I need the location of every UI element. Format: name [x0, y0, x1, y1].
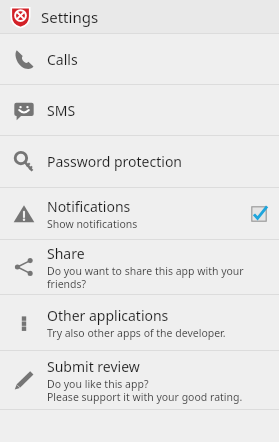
button[interactable]: Submit review: [0, 351, 279, 409]
staticText: Share: [47, 244, 85, 263]
staticText: Show notifications: [47, 217, 138, 231]
staticText: Submit review: [47, 357, 140, 376]
other: Calls: [0, 34, 47, 84]
staticText: Try also other apps of the developer.: [47, 326, 226, 340]
staticText: Do you want to share this app with your …: [47, 264, 244, 291]
button[interactable]: Show notifications toggle: [239, 188, 279, 239]
button[interactable]: Other applications: [0, 295, 279, 350]
other: Share: [0, 240, 47, 294]
button[interactable]: Notifications: [0, 188, 279, 239]
other: Other applications: [0, 295, 47, 350]
staticText: SMS: [47, 101, 76, 120]
other: Submit review: [0, 351, 47, 409]
other: SMS: [0, 85, 47, 135]
other: Notifications: [0, 188, 47, 239]
other: Password protection: [0, 136, 47, 187]
staticText: Do you like this app? Please support it …: [47, 377, 243, 404]
button[interactable]: Calls: [0, 34, 279, 84]
button[interactable]: Password protection: [0, 136, 279, 187]
staticText: Notifications: [47, 197, 131, 216]
staticText: Other applications: [47, 306, 169, 325]
staticText: Settings: [41, 7, 99, 27]
button[interactable]: SMS: [0, 85, 279, 135]
staticText: Password protection: [47, 152, 183, 171]
button[interactable]: Share: [0, 240, 279, 294]
staticText: Calls: [47, 50, 78, 69]
button[interactable]: Settings: [0, 0, 279, 33]
